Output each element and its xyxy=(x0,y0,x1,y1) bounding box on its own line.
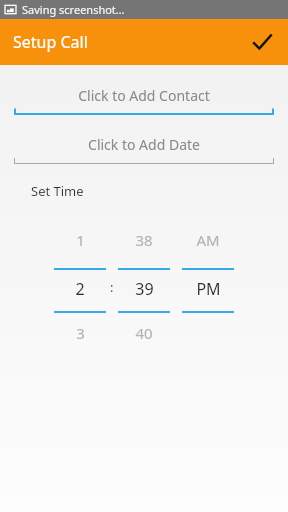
staticText: 40 xyxy=(135,323,153,343)
button[interactable]: AM xyxy=(182,218,234,358)
button[interactable]: Confirm xyxy=(242,22,282,62)
button[interactable]: Click to Add Date xyxy=(14,134,274,164)
staticText: PM xyxy=(196,278,221,300)
button[interactable]: 1 xyxy=(54,218,106,358)
staticText: 2 xyxy=(75,278,85,300)
staticText: Saving screenshot… xyxy=(22,2,125,17)
staticText: AM xyxy=(196,230,220,250)
staticText: 3 xyxy=(76,323,85,343)
button[interactable]: 38 xyxy=(118,218,170,358)
staticText: Click to Add Date xyxy=(88,135,200,154)
staticText: 38 xyxy=(135,230,153,250)
staticText: 1 xyxy=(76,230,85,250)
staticText: : xyxy=(110,278,114,296)
button[interactable]: Click to Add Contact xyxy=(14,85,274,115)
staticText: Set Time xyxy=(31,182,84,200)
staticText: Click to Add Contact xyxy=(78,86,210,105)
staticText: 39 xyxy=(135,278,154,300)
staticText: Setup Call xyxy=(13,31,88,53)
